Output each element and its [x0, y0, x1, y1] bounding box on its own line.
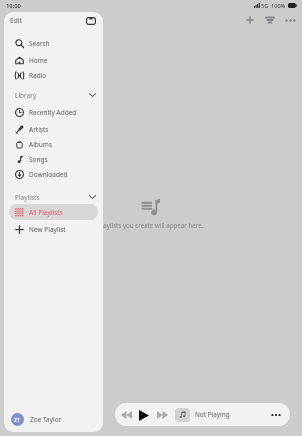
button[interactable]: Songs [9, 151, 98, 167]
button[interactable]: Add playlist [240, 10, 260, 30]
button[interactable]: New Playlist [9, 221, 98, 237]
button[interactable]: Hide sidebar [84, 14, 97, 27]
button[interactable]: Play [136, 407, 152, 423]
button[interactable]: Search [9, 35, 98, 51]
button[interactable]: Home [9, 52, 98, 68]
button[interactable]: Radio [9, 67, 98, 83]
staticText: 100% [271, 2, 286, 10]
staticText: Home [29, 56, 48, 65]
staticText: New Playlist [29, 225, 66, 234]
staticText: Zoe Taylor [30, 415, 62, 424]
staticText: 5G [261, 2, 269, 10]
staticText: Library [15, 91, 37, 100]
button[interactable]: Previous track [118, 407, 134, 423]
button[interactable]: More options [269, 408, 283, 422]
button[interactable]: More options [280, 10, 300, 30]
staticText: 10:00 [6, 2, 21, 10]
staticText: Playlists [15, 193, 40, 202]
button[interactable]: Downloaded [9, 166, 98, 182]
staticText: Playlists you create will appear here. [98, 221, 204, 229]
button[interactable]: Library [15, 87, 96, 103]
button[interactable]: Next track [154, 407, 170, 423]
staticText: Recently Added [29, 108, 77, 117]
staticText: Artists [29, 125, 49, 134]
staticText: Downloaded [29, 170, 68, 179]
button[interactable]: Artists [9, 121, 98, 137]
button[interactable]: Recently Added [9, 104, 98, 120]
staticText: ZT [14, 416, 21, 423]
staticText: Edit [10, 16, 22, 25]
staticText: Not Playing [195, 410, 230, 419]
staticText: Search [29, 39, 50, 48]
button[interactable]: Playlists [15, 189, 96, 205]
button[interactable]: Sort and filter [260, 10, 280, 30]
staticText: All Playlists [29, 208, 63, 217]
staticText: Songs [29, 155, 48, 164]
button[interactable]: Edit [9, 16, 23, 25]
staticText: Albums [29, 140, 53, 149]
button[interactable]: Albums [9, 136, 98, 152]
button[interactable]: All Playlists [9, 204, 98, 220]
button[interactable]: ZT [11, 406, 97, 432]
staticText: Radio [29, 71, 47, 80]
button[interactable]: Previous track [115, 403, 290, 426]
